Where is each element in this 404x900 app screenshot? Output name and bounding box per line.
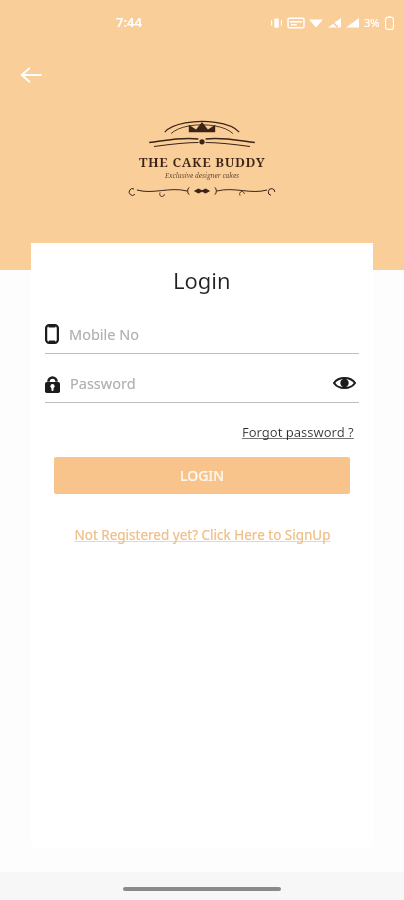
staticText: Password xyxy=(70,373,136,393)
staticText: Not Registered yet? Click Here to SignUp xyxy=(74,526,331,544)
staticText: 3% xyxy=(364,15,380,30)
staticText: Login xyxy=(173,265,231,295)
button[interactable]: Password xyxy=(31,368,373,403)
button[interactable]: Mobile number xyxy=(31,319,373,354)
staticText: Exclusive designer cakes xyxy=(165,171,240,180)
button[interactable]: Forgot password ? xyxy=(238,419,358,445)
button[interactable]: Back xyxy=(12,56,50,94)
staticText: Forgot password ? xyxy=(242,423,354,441)
other: Mobile number xyxy=(45,324,59,344)
button[interactable]: Show password xyxy=(330,372,359,394)
staticText: Mobile No xyxy=(69,324,140,344)
other: Password xyxy=(45,374,60,393)
button[interactable]: LOGIN xyxy=(54,457,350,494)
staticText: THE CAKE BUDDY xyxy=(139,153,266,171)
staticText: 7:44 xyxy=(116,13,142,31)
staticText: LOGIN xyxy=(180,466,225,485)
button[interactable]: Not Registered yet? Click Here to SignUp xyxy=(31,524,373,546)
